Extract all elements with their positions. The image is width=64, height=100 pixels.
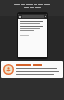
other: App icon — [3, 64, 14, 75]
button[interactable] — [17, 12, 48, 59]
button[interactable]: App icon — [1, 61, 63, 78]
